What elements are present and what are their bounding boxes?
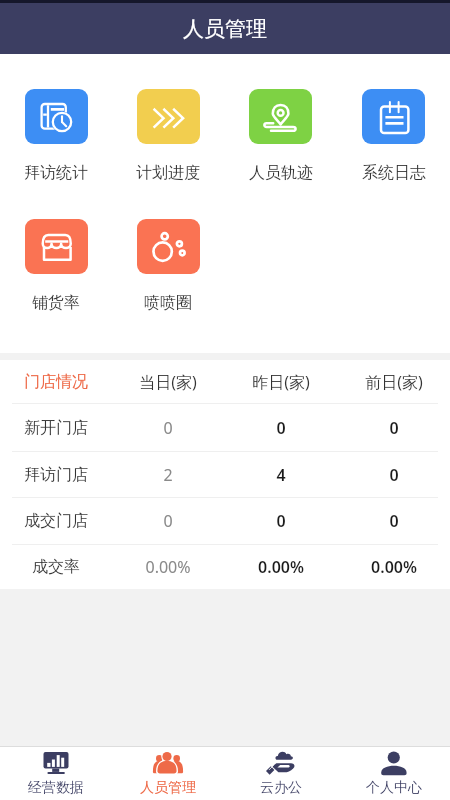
staticText: 人员管理 [183, 16, 267, 42]
button[interactable]: 喷喷圈 [112, 219, 224, 313]
other: 个人中心 [381, 751, 407, 777]
staticText: 人员管理 [140, 779, 196, 797]
button[interactable]: 经营数据 [0, 747, 112, 800]
staticText: 0.00% [371, 556, 417, 578]
button[interactable]: 系统日志 [337, 89, 450, 183]
button[interactable]: 人员管理 [112, 747, 224, 800]
staticText: 当日(家) [139, 371, 197, 393]
staticText: 系统日志 [362, 163, 426, 183]
staticText: 2 [163, 464, 173, 486]
button[interactable]: 拜访统计 [0, 89, 112, 183]
staticText: 前日(家) [365, 371, 423, 393]
staticText: 0 [276, 510, 286, 532]
staticText: 0 [163, 510, 173, 532]
button[interactable]: 个人中心 [337, 747, 450, 800]
staticText: 0 [276, 417, 286, 439]
staticText: 0 [163, 417, 173, 439]
staticText: 0 [389, 417, 399, 439]
staticText: 昨日(家) [252, 371, 310, 393]
other: 云办公 [268, 751, 294, 777]
staticText: 成交门店 [24, 511, 88, 531]
staticText: 云办公 [260, 779, 302, 797]
staticText: 个人中心 [366, 779, 422, 797]
other: 经营数据 [43, 751, 69, 777]
staticText: 0.00% [258, 556, 304, 578]
staticText: 0.00% [145, 556, 191, 578]
staticText: 0 [389, 510, 399, 532]
staticText: 拜访门店 [24, 465, 88, 485]
staticText: 经营数据 [28, 779, 84, 797]
other: 人员管理 [155, 751, 181, 777]
staticText: 喷喷圈 [144, 293, 192, 313]
staticText: 门店情况 [24, 372, 88, 392]
button[interactable]: 人员轨迹 [224, 89, 337, 183]
staticText: 计划进度 [136, 163, 200, 183]
button[interactable]: 铺货率 [0, 219, 112, 313]
staticText: 0 [389, 464, 399, 486]
staticText: 成交率 [32, 557, 80, 577]
button[interactable]: 云办公 [224, 747, 337, 800]
staticText: 拜访统计 [24, 163, 88, 183]
button[interactable]: 计划进度 [112, 89, 224, 183]
staticText: 人员轨迹 [249, 163, 313, 183]
staticText: 铺货率 [32, 293, 80, 313]
staticText: 4 [276, 464, 286, 486]
staticText: 新开门店 [24, 418, 88, 438]
